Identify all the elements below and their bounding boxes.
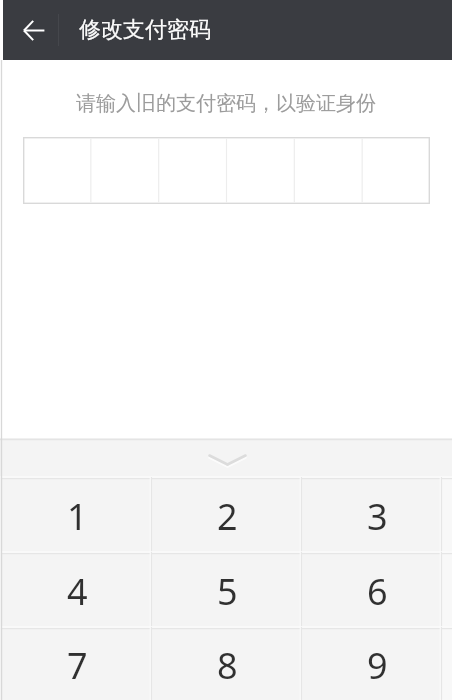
staticText: 4 (67, 567, 88, 616)
button[interactable]: Hide keyboard (197, 446, 257, 476)
staticText: 2 (217, 492, 238, 541)
staticText: 修改支付密码 (79, 16, 211, 44)
button[interactable]: 2 (152, 477, 302, 552)
button[interactable]: 9 (302, 627, 452, 700)
staticText: 3 (367, 492, 388, 541)
button[interactable]: 3 (302, 477, 452, 552)
staticText: 7 (67, 641, 88, 690)
staticText: 1 (67, 492, 88, 541)
button[interactable]: 6 (302, 552, 452, 627)
button[interactable]: 4 (2, 552, 152, 627)
button[interactable]: 5 (152, 552, 302, 627)
button[interactable]: 1 (2, 477, 152, 552)
staticText: 8 (217, 641, 238, 690)
staticText: 请输入旧的支付密码，以验证身份 (76, 91, 376, 116)
staticText: 9 (367, 641, 388, 690)
button[interactable]: 7 (2, 627, 152, 700)
button[interactable]: Back (3, 0, 58, 60)
staticText: 6 (367, 567, 388, 616)
button[interactable]: 8 (152, 627, 302, 700)
staticText: 5 (217, 567, 238, 616)
